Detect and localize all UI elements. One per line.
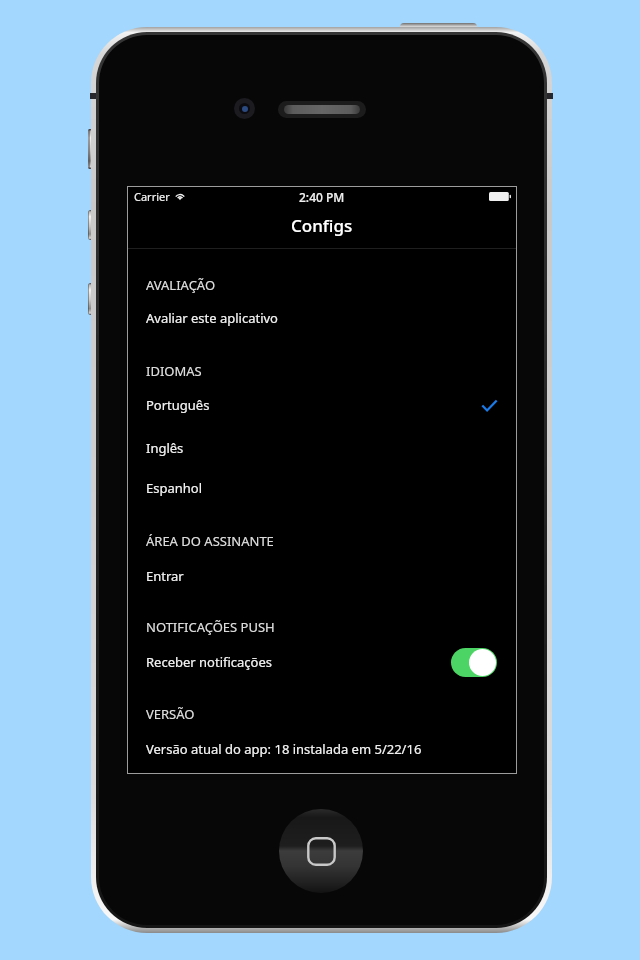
staticText: 2:40 PM (299, 189, 345, 205)
button[interactable]: Inglês (128, 430, 516, 466)
button[interactable]: Versão atual do app: 18 instalada em 5/2… (128, 731, 516, 767)
staticText: Avaliar este aplicativo (146, 309, 278, 327)
staticText: VERSÃO (146, 705, 195, 723)
staticText: Inglês (146, 439, 184, 457)
button[interactable]: Entrar (128, 558, 516, 594)
button[interactable]: Espanhol (128, 470, 516, 506)
other: Selected (482, 400, 497, 411)
staticText: ÁREA DO ASSINANTE (146, 532, 274, 550)
staticText: Entrar (146, 567, 184, 585)
staticText: Receber notificações (146, 653, 273, 671)
staticText: AVALIAÇÃO (146, 276, 216, 294)
staticText: IDIOMAS (146, 362, 202, 380)
button[interactable]: Avaliar este aplicativo (128, 300, 516, 336)
button[interactable]: Receber notificações (128, 644, 516, 680)
button[interactable]: Receber notificações (451, 648, 497, 677)
staticText: Carrier (134, 189, 170, 204)
staticText: NOTIFICAÇÕES PUSH (146, 618, 275, 636)
staticText: Configs (291, 214, 353, 237)
staticText: Português (146, 396, 210, 414)
staticText: Espanhol (146, 479, 203, 497)
button[interactable]: Português (128, 387, 516, 423)
staticText: Versão atual do app: 18 instalada em 5/2… (146, 740, 422, 758)
